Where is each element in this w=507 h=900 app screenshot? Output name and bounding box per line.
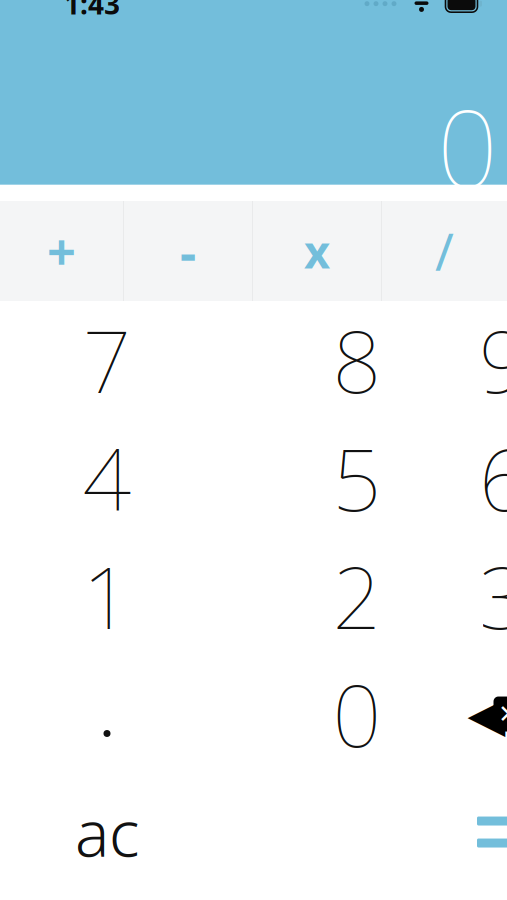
button[interactable]: / (382, 201, 507, 301)
button[interactable]: 9 (500, 301, 507, 419)
button[interactable]: 5 (214, 419, 500, 537)
staticText: ac (75, 789, 139, 874)
button[interactable] (0, 655, 214, 773)
button[interactable]: 7 (0, 301, 214, 419)
button[interactable]: 6 (500, 419, 507, 537)
staticText: 5 (332, 421, 381, 535)
staticText: 8 (332, 303, 381, 417)
button[interactable]: 0 (214, 655, 500, 773)
button[interactable]: + (0, 201, 123, 301)
staticText: 7 (82, 303, 131, 417)
staticText: 4 (82, 421, 131, 535)
button[interactable]: Equals (500, 773, 507, 891)
staticText: 1 (82, 539, 131, 653)
staticText: 0 (437, 76, 498, 217)
button[interactable]: 1 (0, 537, 214, 655)
staticText: 0 (332, 657, 381, 771)
button[interactable]: 2 (214, 537, 500, 655)
staticText: x (304, 221, 330, 281)
button[interactable]: ac (0, 773, 214, 891)
button[interactable]: 3 (500, 537, 507, 655)
staticText: - (180, 217, 196, 285)
button[interactable]: Delete (500, 655, 507, 773)
staticText: 1:43 (64, 0, 120, 22)
staticText: 9 (479, 303, 507, 417)
button[interactable]: - (124, 201, 252, 301)
staticText: 3 (479, 539, 507, 653)
button[interactable]: 8 (214, 301, 500, 419)
staticText: / (435, 217, 454, 285)
staticText: ✕ (498, 700, 507, 728)
staticText: + (47, 217, 76, 285)
button[interactable]: x (253, 201, 381, 301)
button[interactable]: 4 (0, 419, 214, 537)
staticText: 6 (479, 421, 507, 535)
staticText: 2 (332, 539, 381, 653)
button[interactable] (214, 773, 500, 891)
staticText: ◀ (467, 686, 505, 742)
